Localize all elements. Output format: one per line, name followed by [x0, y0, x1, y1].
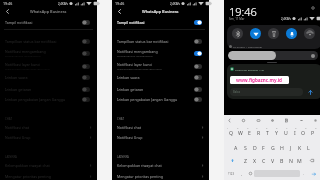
button[interactable]: J — [286, 142, 295, 153]
button[interactable]: E — [245, 127, 254, 138]
staticText: V — [271, 157, 275, 164]
button[interactable]: Keyboard tool 3 — [255, 117, 261, 123]
button[interactable]: X — [250, 155, 259, 166]
staticText: www.figbaznc.my.id — [236, 77, 283, 83]
button[interactable]: Send — [306, 88, 314, 96]
button[interactable]: , — [238, 168, 246, 179]
button[interactable]: Toggle — [82, 87, 90, 92]
button[interactable]: B — [277, 155, 286, 166]
button[interactable]: V — [268, 155, 277, 166]
button[interactable]: G — [268, 142, 277, 153]
staticText: Notifikasi layar kunci — [117, 62, 153, 67]
button[interactable]: Flashlight — [268, 28, 279, 39]
button[interactable]: Tampilkan status bar notifikasi — [0, 36, 97, 46]
button[interactable]: Enter — [308, 168, 319, 179]
staticText: A — [234, 144, 238, 151]
button[interactable]: Toggle — [82, 75, 90, 80]
staticText: 4 — [256, 126, 258, 129]
button[interactable]: Notifikasi mengambang — [112, 48, 209, 58]
button[interactable]: Keyboard tool 4 — [269, 117, 275, 123]
button[interactable]: Toggle — [194, 97, 202, 102]
button[interactable]: Izinkan suara — [0, 72, 97, 82]
staticText: Sembunyikan konten pada layar kunci — [117, 67, 162, 70]
button[interactable]: N — [286, 155, 295, 166]
button[interactable]: Notifikasi Grup — [0, 133, 97, 142]
button[interactable]: Q — [227, 127, 236, 138]
button[interactable]: Keyboard tool 6 — [298, 117, 304, 123]
button[interactable]: Kelompokkan riwayat chat — [112, 161, 209, 170]
button[interactable]: Notifikasi chat — [0, 123, 97, 132]
button[interactable]: Toggle — [194, 87, 202, 92]
button[interactable]: W — [236, 127, 245, 138]
button[interactable]: Toggle — [194, 75, 202, 80]
button[interactable]: Balas — [230, 88, 303, 96]
button[interactable]: O — [299, 127, 308, 138]
button[interactable]: Toggle — [82, 64, 90, 69]
button[interactable]: Toggle — [82, 20, 90, 25]
button[interactable]: Toggle — [194, 39, 202, 44]
staticText: Izinkan pengabaian Jangan Ganggu — [117, 97, 178, 102]
button[interactable]: Notifikasi chat — [112, 123, 209, 132]
button[interactable]: Mengatur prioritas penting — [0, 172, 97, 180]
button[interactable]: Brightness — [228, 51, 318, 60]
button[interactable]: M — [295, 155, 304, 166]
button[interactable]: Wi-Fi — [250, 28, 261, 39]
button[interactable]: Back — [114, 6, 125, 17]
button[interactable]: Toggle — [82, 97, 90, 102]
button[interactable]: Notifikasi layar kunci — [0, 61, 97, 71]
button[interactable]: Keyboard tool 2 — [240, 117, 246, 123]
button[interactable]: Backspace — [304, 155, 320, 166]
button[interactable]: Emoji — [246, 168, 254, 179]
button[interactable]: Kelompokkan riwayat chat — [0, 161, 97, 170]
button[interactable]: C — [259, 155, 268, 166]
button[interactable]: Mengatur prioritas penting — [112, 172, 209, 180]
button[interactable]: H — [277, 142, 286, 153]
button[interactable]: R — [254, 127, 263, 138]
button[interactable]: ?123 — [225, 168, 238, 179]
button[interactable]: Shift — [224, 155, 240, 166]
button[interactable]: Keyboard tool 5 — [283, 117, 289, 123]
button[interactable]: Izinkan getaran — [0, 84, 97, 94]
button[interactable]: Notifikasi Grup — [112, 133, 209, 142]
button[interactable]: Notifikasi layar kunci — [112, 61, 209, 71]
button[interactable]: Toggle — [194, 64, 202, 69]
button[interactable]: U — [281, 127, 290, 138]
button[interactable]: Izinkan pengabaian Jangan Ganggu — [112, 94, 209, 104]
button[interactable]: Toggle — [194, 20, 202, 25]
button[interactable]: Tampil notifikasi — [0, 17, 97, 27]
staticText: Notifikasi Grup — [117, 135, 143, 140]
button[interactable]: T — [263, 127, 272, 138]
button[interactable]: Izinkan pengabaian Jangan Ganggu — [0, 94, 97, 104]
button[interactable]: Izinkan suara — [112, 72, 209, 82]
staticText: T — [266, 129, 269, 136]
button[interactable]: Z — [240, 155, 250, 166]
button[interactable]: Do not disturb — [286, 28, 297, 39]
staticText: Tampilkan status bar notifikasi — [117, 39, 169, 44]
button[interactable]: P — [308, 127, 317, 138]
button[interactable]: I — [290, 127, 299, 138]
button[interactable]: Toggle — [82, 39, 90, 44]
button[interactable]: Tampil notifikasi — [112, 17, 209, 27]
button[interactable]: Back — [2, 6, 13, 17]
button[interactable]: Notifikasi mengambang — [0, 48, 97, 58]
button[interactable]: Keyboard tool 1 — [226, 117, 232, 123]
button[interactable]: Izinkan getaran — [112, 84, 209, 94]
staticText: 7 — [286, 126, 288, 129]
button[interactable]: F — [259, 142, 268, 153]
button[interactable]: Toggle — [82, 51, 90, 56]
button[interactable]: Y — [272, 127, 281, 138]
button[interactable]: D — [250, 142, 259, 153]
button[interactable]: Keyboard tool 7 — [312, 117, 318, 123]
button[interactable]: Toggle — [194, 51, 202, 56]
button[interactable]: Bluetooth — [232, 28, 243, 39]
button[interactable]: S — [241, 142, 250, 153]
button[interactable]: A — [231, 142, 241, 153]
button[interactable]: Tampilkan status bar notifikasi — [112, 36, 209, 46]
button[interactable]: K — [295, 142, 304, 153]
button[interactable]: Settings — [310, 5, 316, 11]
button[interactable]: L — [304, 142, 313, 153]
button[interactable]: Hotspot — [304, 28, 315, 39]
staticText: CHAT — [5, 117, 13, 121]
